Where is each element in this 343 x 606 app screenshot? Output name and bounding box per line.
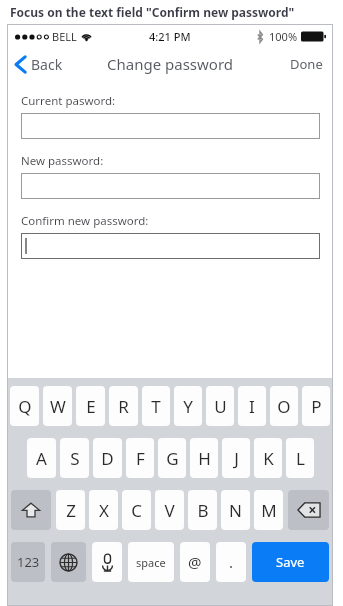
button[interactable]: N [221,490,250,530]
staticText: S [70,447,80,470]
button[interactable] [21,113,320,139]
staticText: X [99,499,109,522]
button[interactable]: D [93,438,122,478]
button[interactable]: V [155,490,184,530]
staticText: Confirm new password: [21,213,149,229]
button[interactable]: Change keyboard language [51,542,86,582]
button[interactable]: 123 [11,542,45,582]
staticText: V [164,499,175,522]
staticText: D [101,447,114,470]
button[interactable]: F [126,438,154,478]
staticText: O [277,395,291,418]
staticText: B [197,499,209,522]
button[interactable]: K [254,438,282,478]
staticText: L [296,447,305,470]
staticText: Y [183,395,193,418]
staticText: Current pasword: [21,93,116,109]
button[interactable]: W [43,386,72,426]
button[interactable]: H [190,438,218,478]
staticText: Save [276,553,305,571]
staticText: R [118,395,129,418]
button[interactable]: Done [280,49,333,79]
button[interactable]: . [216,542,246,582]
staticText: J [234,447,239,470]
button[interactable]: R [109,386,138,426]
button[interactable] [21,173,320,199]
button[interactable]: E [76,386,105,426]
button[interactable]: B [188,490,217,530]
staticText: P [311,395,322,418]
button[interactable]: Q [10,386,39,426]
staticText: F [136,447,145,470]
button[interactable]: T [142,386,170,426]
staticText: @ [188,552,202,572]
staticText: I [249,395,255,418]
staticText: E [86,395,96,418]
button[interactable]: A [27,438,56,478]
staticText: 4:21 PM [149,29,191,44]
button[interactable]: space [128,542,174,582]
staticText: New password: [21,153,104,169]
button[interactable]: I [238,386,266,426]
button[interactable]: Back [7,51,71,78]
button[interactable]: J [222,438,250,478]
button[interactable]: U [206,386,234,426]
button[interactable]: O [270,386,298,426]
button[interactable]: Save [252,542,329,582]
button[interactable]: @ [180,542,210,582]
staticText: A [36,447,47,470]
button[interactable]: Z [56,490,85,530]
button[interactable]: Backspace [288,490,329,530]
button[interactable]: X [89,490,118,530]
staticText: Back [31,55,63,74]
staticText: Done [290,55,323,73]
staticText: BELL [52,29,77,44]
staticText: C [131,499,142,522]
staticText: N [229,499,242,522]
button[interactable]: M [254,490,283,530]
staticText: Z [66,499,76,522]
staticText: T [151,395,161,418]
button[interactable]: Y [174,386,202,426]
button[interactable] [21,233,320,259]
staticText: Change password [107,54,234,74]
button[interactable]: S [60,438,89,478]
staticText: M [261,499,277,522]
button[interactable]: G [158,438,186,478]
button[interactable]: Shift [11,490,51,530]
staticText: space [136,555,166,570]
staticText: G [166,447,179,470]
button[interactable]: C [122,490,151,530]
staticText: . [229,552,234,572]
staticText: 100% [269,29,298,44]
staticText: K [263,447,274,470]
button[interactable]: Voice input [92,542,122,582]
staticText: 123 [17,553,40,571]
staticText: U [214,395,227,418]
staticText: Focus on the text field "Confirm new pas… [10,4,295,20]
button[interactable]: P [302,386,330,426]
staticText: H [198,447,211,470]
staticText: Q [18,395,32,418]
button[interactable]: L [286,438,314,478]
staticText: W [50,395,66,418]
